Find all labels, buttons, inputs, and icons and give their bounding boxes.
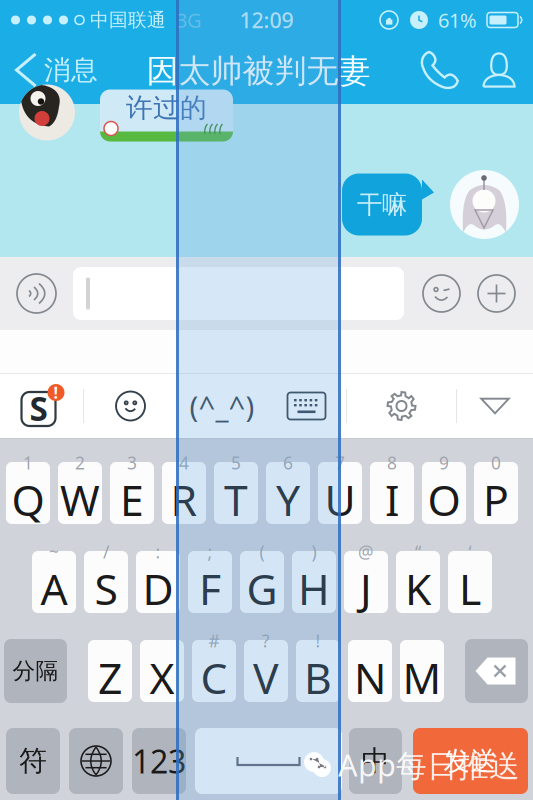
staticText: A	[40, 560, 67, 617]
button[interactable]: Settings	[347, 374, 456, 438]
button[interactable]	[348, 640, 392, 702]
button[interactable]: ~	[32, 551, 76, 613]
button[interactable]: “	[396, 551, 440, 613]
staticText: X	[149, 649, 174, 706]
staticText: W	[60, 471, 100, 528]
button[interactable]: Emoji	[423, 275, 460, 312]
staticText: O	[427, 471, 460, 528]
staticText: B	[304, 649, 332, 706]
staticText: 消息	[44, 54, 98, 86]
staticText: S	[94, 560, 117, 617]
button[interactable]: 符	[6, 728, 60, 794]
staticText: )	[311, 540, 316, 563]
staticText: App每日推送	[338, 744, 520, 785]
button[interactable]	[140, 640, 184, 702]
staticText: ;	[207, 540, 212, 563]
button[interactable]: !	[296, 640, 340, 702]
staticText: 6	[283, 451, 293, 474]
button[interactable]: )	[292, 551, 336, 613]
button[interactable]: 4	[162, 462, 206, 524]
staticText: :	[155, 540, 160, 563]
button[interactable]	[69, 728, 123, 794]
staticText: “	[415, 540, 421, 563]
button[interactable]: :	[136, 551, 180, 613]
staticText: 12:09	[239, 6, 293, 34]
staticText: !	[53, 382, 58, 403]
button[interactable]: 5	[214, 462, 258, 524]
button[interactable]: Kaomoji	[177, 374, 267, 438]
staticText: 7	[335, 451, 345, 474]
button[interactable]: ‘	[448, 551, 492, 613]
staticText: I	[385, 471, 399, 528]
button[interactable]: 9	[422, 462, 466, 524]
staticText: !	[315, 629, 320, 652]
button[interactable]: 分隔	[4, 639, 67, 703]
staticText: K	[405, 560, 431, 617]
staticText: M	[402, 649, 441, 706]
staticText: 0	[491, 451, 501, 474]
staticText: ~	[49, 540, 59, 563]
staticText: R	[170, 471, 197, 528]
button[interactable]: 0	[474, 462, 518, 524]
staticText: 中国联通	[90, 8, 166, 31]
staticText: J	[360, 560, 372, 617]
staticText: 2	[75, 451, 85, 474]
button[interactable]: 6	[266, 462, 310, 524]
staticText: 发送	[443, 745, 497, 777]
button[interactable]: More	[478, 275, 515, 312]
button[interactable]	[465, 639, 528, 703]
staticText: 9	[439, 451, 449, 474]
staticText: 分隔	[12, 657, 58, 685]
staticText: U	[324, 471, 355, 528]
button[interactable]: 消息	[0, 38, 108, 102]
button[interactable]: 2	[58, 462, 102, 524]
staticText: 5	[231, 451, 241, 474]
staticText: 8	[387, 451, 397, 474]
button[interactable]: Sogou input	[0, 374, 83, 438]
staticText: @	[358, 540, 374, 563]
staticText: 符	[19, 744, 47, 778]
button[interactable]: Keyboard	[267, 374, 346, 438]
button[interactable]: #	[192, 640, 236, 702]
button[interactable]	[400, 640, 444, 702]
button[interactable]: Hide keyboard	[457, 374, 533, 438]
button[interactable]: Voice message	[17, 274, 56, 313]
button[interactable]: 1	[6, 462, 50, 524]
button[interactable]: /	[84, 551, 128, 613]
button[interactable]: 发送	[413, 728, 528, 794]
button[interactable]: Emoji	[84, 374, 177, 438]
staticText: 中	[361, 744, 389, 778]
button[interactable]: @	[344, 551, 388, 613]
staticText: 3	[127, 451, 137, 474]
staticText: L	[459, 560, 481, 617]
button[interactable]	[88, 640, 132, 702]
staticText: V	[253, 649, 279, 706]
button[interactable]: ;	[188, 551, 232, 613]
staticText: 61%	[438, 7, 477, 33]
button[interactable]: 7	[318, 462, 362, 524]
button[interactable]: ?	[244, 640, 288, 702]
staticText: Y	[276, 471, 300, 528]
button[interactable]: 123	[132, 728, 186, 794]
staticText: T	[224, 471, 248, 528]
staticText: C	[200, 649, 227, 706]
button[interactable]: (	[240, 551, 284, 613]
button[interactable]: 3	[110, 462, 154, 524]
staticText: D	[142, 560, 173, 617]
staticText: Z	[98, 649, 122, 706]
staticText: H	[298, 560, 330, 617]
staticText: 许过的	[126, 91, 207, 124]
button[interactable]: 8	[370, 462, 414, 524]
staticText: (^_^)	[189, 386, 254, 425]
button[interactable]: 中	[349, 728, 402, 794]
staticText: G	[246, 560, 277, 617]
staticText: E	[120, 471, 144, 528]
button[interactable]: Contact info	[471, 38, 527, 102]
button[interactable]	[195, 728, 342, 794]
staticText: /	[103, 540, 109, 563]
button[interactable]: Call	[409, 38, 471, 102]
staticText: S	[29, 386, 47, 430]
staticText: 123	[132, 740, 186, 782]
staticText: P	[483, 471, 509, 528]
staticText: Q	[11, 471, 44, 528]
